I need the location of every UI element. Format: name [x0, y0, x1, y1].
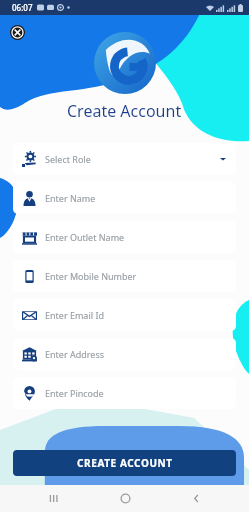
staticText: CREATE ACCOUNT [77, 456, 173, 470]
button[interactable]: Enter Mobile Number [13, 260, 236, 292]
staticText: Enter Pincode [45, 387, 227, 399]
staticText: Enter Address [45, 348, 227, 360]
staticText: 06:07 [12, 2, 33, 13]
button[interactable]: Enter Pincode [13, 377, 236, 409]
staticText: Enter Outlet Name [45, 231, 227, 243]
staticText: Enter Name [45, 192, 227, 204]
button[interactable]: Select Role [13, 143, 236, 175]
staticText: Enter Mobile Number [45, 270, 227, 282]
staticText: Enter Email Id [45, 309, 227, 321]
staticText: Select Role [45, 153, 219, 165]
button[interactable]: Home [107, 485, 143, 512]
button[interactable]: Close [8, 23, 26, 41]
button[interactable]: Back [178, 485, 214, 512]
staticText: Create Account [67, 100, 182, 122]
button[interactable]: Enter Email Id [13, 299, 236, 331]
button[interactable]: Enter Name [13, 182, 236, 214]
button[interactable]: CREATE ACCOUNT [13, 450, 236, 476]
button[interactable]: Enter Outlet Name [13, 221, 236, 253]
button[interactable]: Enter Address [13, 338, 236, 370]
button[interactable]: Recents [35, 485, 71, 512]
